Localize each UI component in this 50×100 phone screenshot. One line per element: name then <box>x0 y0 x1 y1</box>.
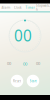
button[interactable]: Stopwatch <box>36 4 50 11</box>
staticText: Stopwatch <box>36 3 50 11</box>
staticText: 00 <box>23 61 27 67</box>
staticText: 00 <box>14 25 32 46</box>
staticText: Start <box>29 79 36 83</box>
button[interactable]: Reset <box>11 75 23 87</box>
staticText: Reset <box>13 79 21 83</box>
staticText: 00 <box>7 61 11 66</box>
button[interactable]: Alarm <box>0 4 12 11</box>
staticText: Timer <box>25 5 34 9</box>
staticText: Clock <box>14 5 22 9</box>
staticText: Alarm <box>1 5 10 9</box>
staticText: 00 <box>36 61 40 66</box>
button[interactable]: Start <box>27 75 39 87</box>
button[interactable]: Timer <box>24 4 36 11</box>
button[interactable]: Clock <box>12 4 24 11</box>
